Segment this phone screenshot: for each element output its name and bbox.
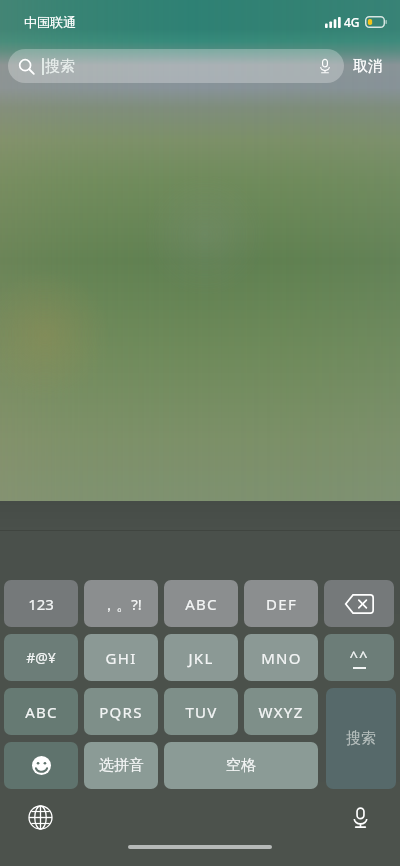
button[interactable]: Switch keyboard language (20, 797, 60, 837)
button[interactable]: ABC (4, 688, 78, 735)
button[interactable]: DEF (244, 580, 318, 627)
button[interactable]: WXYZ (244, 688, 318, 735)
staticText: 4G (344, 14, 360, 30)
staticText: 选拼音 (99, 756, 144, 775)
button[interactable]: Voice input (340, 797, 380, 837)
button[interactable]: PQRS (84, 688, 158, 735)
staticText: JKL (188, 648, 214, 668)
button[interactable]: 搜索 (8, 49, 344, 83)
button[interactable]: 搜索 (326, 688, 396, 789)
staticText: ABC (25, 702, 58, 722)
staticText: 取消 (353, 57, 383, 76)
button[interactable]: 123 (4, 580, 78, 627)
button[interactable]: ABC (164, 580, 238, 627)
button[interactable]: Emoji (4, 742, 78, 789)
staticText: ，。?! (101, 594, 142, 614)
staticText: WXYZ (258, 702, 304, 722)
button[interactable]: Emoticons (324, 634, 394, 681)
staticText: ^^ (349, 646, 369, 666)
button[interactable]: GHI (84, 634, 158, 681)
staticText: #@¥ (26, 648, 56, 667)
button[interactable]: #@¥ (4, 634, 78, 681)
button[interactable]: 选拼音 (84, 742, 158, 789)
button[interactable]: JKL (164, 634, 238, 681)
staticText: 搜索 (346, 729, 376, 748)
staticText: 搜索 (45, 57, 75, 76)
button[interactable]: 空格 (164, 742, 318, 789)
button[interactable]: Voice search (314, 55, 336, 77)
staticText: MNO (261, 648, 302, 668)
staticText: 空格 (226, 756, 256, 775)
button[interactable]: Backspace (324, 580, 394, 627)
staticText: DEF (266, 594, 297, 614)
staticText: ABC (185, 594, 218, 614)
staticText: 123 (28, 594, 54, 614)
staticText: GHI (105, 648, 137, 668)
button[interactable]: MNO (244, 634, 318, 681)
staticText: 中国联通 (24, 14, 76, 30)
button[interactable]: 取消 (344, 49, 392, 83)
button[interactable]: ，。?! (84, 580, 158, 627)
staticText: PQRS (99, 702, 143, 722)
button[interactable]: TUV (164, 688, 238, 735)
staticText: TUV (185, 702, 218, 722)
